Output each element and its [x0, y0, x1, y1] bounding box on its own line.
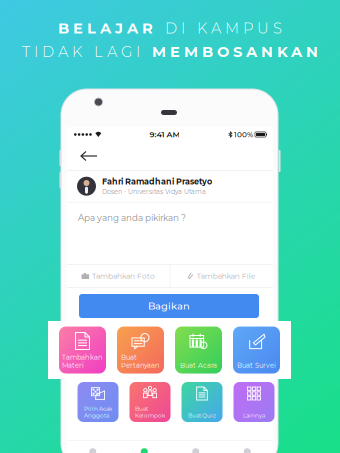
button[interactable]: Fahri Ramadhani Prasetyo	[67, 171, 273, 202]
button[interactable]: Bagikan	[79, 294, 259, 318]
button[interactable]: Lainnya	[233, 382, 274, 422]
staticText: Dosen · Universitas Vidya Utama	[102, 188, 206, 196]
button[interactable]: Apa yang anda pikirkan ?	[67, 202, 273, 264]
button[interactable]: Buat Kelompok	[129, 382, 170, 422]
staticText: 100%	[234, 130, 253, 139]
staticText: Buat Kelompok	[135, 405, 165, 419]
staticText: Buat Survei	[237, 361, 276, 369]
button[interactable]: Tambahkan Materi	[59, 326, 106, 373]
staticText: Pilih Acak Anggota	[84, 405, 112, 419]
staticText: Buat Quiz	[188, 412, 216, 419]
button[interactable]: Tambahkan File	[170, 265, 273, 287]
button[interactable]: Pilih Acak Anggota	[77, 382, 118, 422]
button[interactable]: Buat Acara	[175, 326, 222, 373]
staticText: Tambahkan Materi	[62, 353, 103, 369]
staticText: Bagikan	[148, 300, 190, 312]
button[interactable]: Tambahkan Foto	[67, 265, 170, 287]
button[interactable]: Buat Quiz	[181, 382, 222, 422]
button[interactable]: Buat Pertanyaan	[117, 326, 164, 373]
staticText: 9:41 AM	[149, 130, 180, 139]
button[interactable]: Tab 2	[118, 441, 170, 453]
button[interactable]: Tab 3	[170, 441, 221, 453]
staticText: Apa yang anda pikirkan ?	[78, 212, 186, 223]
staticText: Fahri Ramadhani Prasetyo	[102, 177, 212, 186]
staticText: Buat Pertanyaan	[121, 353, 160, 369]
button[interactable]: Back	[75, 143, 103, 169]
staticText: Buat Acara	[180, 361, 217, 369]
staticText: Tambahkan File	[197, 271, 256, 280]
button[interactable]: Tab 4	[221, 441, 273, 453]
button[interactable]: Buat Survei	[233, 326, 280, 373]
button[interactable]: Tab 1	[67, 441, 118, 453]
staticText: Lainnya	[243, 412, 265, 419]
staticText: BELAJAR DI KAMPUS	[58, 20, 282, 37]
staticText: Tambahkan Foto	[92, 271, 155, 280]
staticText: TIDAK LAGI MEMBOSANKAN	[22, 43, 318, 60]
